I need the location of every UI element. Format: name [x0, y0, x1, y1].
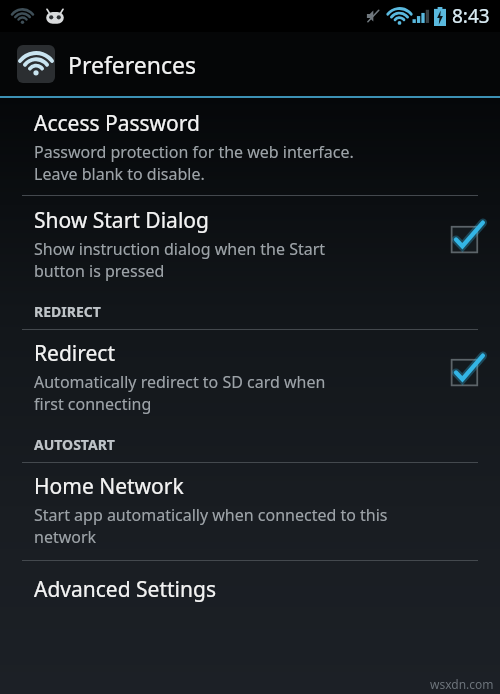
- staticText: wsxdn.com: [430, 676, 494, 692]
- staticText: 8:43: [452, 3, 490, 29]
- staticText: Access Password: [34, 109, 200, 138]
- staticText: Show instruction dialog when the Start b…: [34, 238, 326, 282]
- staticText: REDIRECT: [34, 302, 101, 321]
- button[interactable]: Access Password: [0, 99, 500, 195]
- button[interactable]: Advanced Settings: [0, 561, 500, 618]
- staticText: Redirect: [34, 339, 115, 368]
- staticText: AUTOSTART: [34, 435, 115, 454]
- staticText: Start app automatically when connected t…: [34, 504, 388, 548]
- staticText: Home Network: [34, 472, 184, 501]
- button[interactable]: Home Network: [0, 463, 500, 560]
- staticText: Advanced Settings: [34, 575, 216, 604]
- button[interactable]: Redirect: [0, 330, 500, 427]
- button[interactable]: Toggle Show Start Dialog: [450, 220, 484, 254]
- button[interactable]: Toggle Redirect: [450, 353, 484, 387]
- staticText: Automatically redirect to SD card when f…: [34, 371, 326, 415]
- staticText: Preferences: [68, 49, 197, 80]
- button[interactable]: Preferences: [0, 32, 500, 96]
- button[interactable]: Show Start Dialog: [0, 196, 500, 294]
- staticText: Password protection for the web interfac…: [34, 141, 354, 185]
- staticText: Show Start Dialog: [34, 206, 209, 235]
